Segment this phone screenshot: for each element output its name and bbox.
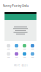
button[interactable]: App	[28, 52, 36, 58]
button[interactable]: App	[12, 52, 20, 58]
button[interactable]: App	[28, 44, 36, 50]
staticText: App	[7, 48, 10, 50]
button[interactable]: App	[4, 44, 12, 50]
staticText: App	[15, 48, 18, 50]
staticText: App	[31, 57, 34, 58]
button[interactable]: App	[4, 52, 12, 58]
staticText: App	[15, 57, 18, 58]
staticText: App	[7, 57, 10, 58]
button[interactable]: App	[20, 44, 28, 50]
staticText: App	[31, 48, 34, 50]
staticText: Funny Poetry Urdu	[3, 4, 29, 8]
staticText: App	[23, 48, 26, 50]
staticText: More apps	[13, 63, 27, 67]
button[interactable]: App	[12, 44, 20, 50]
staticText: App	[23, 57, 26, 58]
button[interactable]: App	[20, 52, 28, 58]
